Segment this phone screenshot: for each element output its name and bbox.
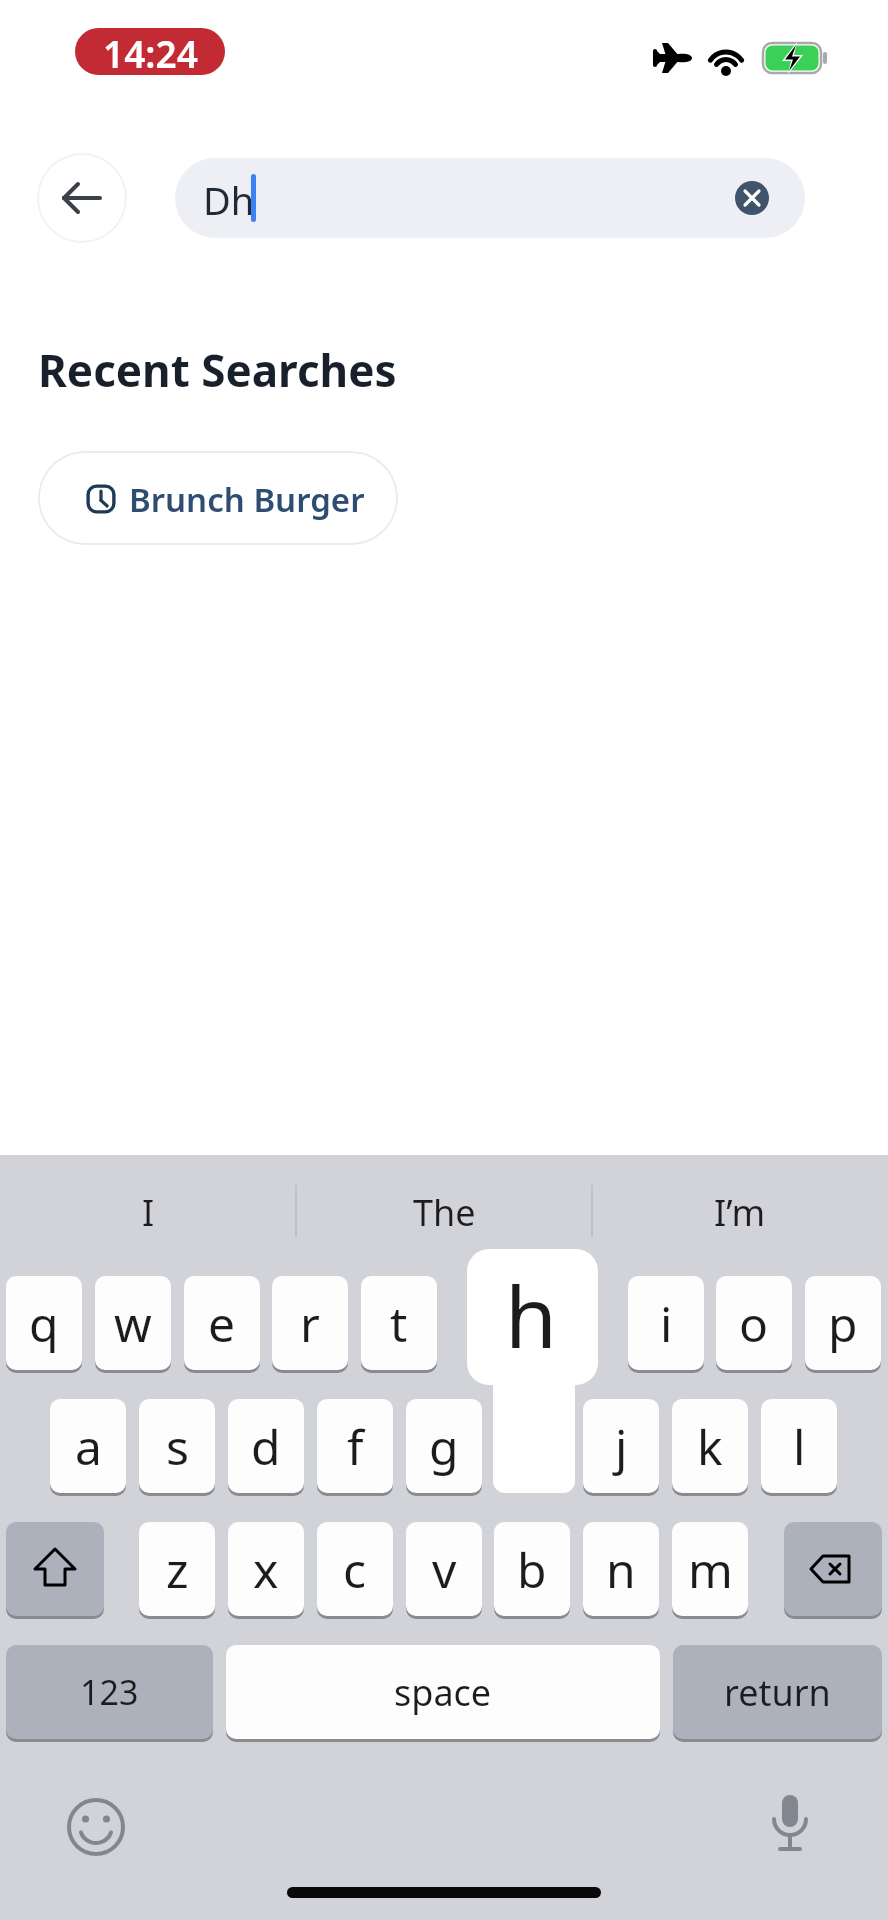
staticText: t: [390, 1291, 408, 1356]
button[interactable]: [735, 181, 769, 215]
button[interactable]: z: [139, 1522, 215, 1616]
button[interactable]: [37, 153, 127, 243]
staticText: I: [142, 1188, 155, 1237]
staticText: c: [343, 1537, 367, 1602]
staticText: g: [429, 1414, 459, 1479]
button[interactable]: g: [406, 1399, 482, 1493]
staticText: l: [793, 1414, 806, 1479]
staticText: I’m: [714, 1188, 766, 1237]
button[interactable]: k: [672, 1399, 748, 1493]
button[interactable]: c: [317, 1522, 393, 1616]
button[interactable]: s: [139, 1399, 215, 1493]
button[interactable]: f: [317, 1399, 393, 1493]
button[interactable]: e: [184, 1276, 260, 1370]
button[interactable]: x: [228, 1522, 304, 1616]
staticText: return: [724, 1668, 831, 1717]
staticText: e: [208, 1291, 236, 1356]
staticText: a: [75, 1414, 102, 1479]
button[interactable]: p: [805, 1276, 881, 1370]
button[interactable]: m: [672, 1522, 748, 1616]
staticText: i: [660, 1291, 673, 1356]
staticText: r: [300, 1291, 320, 1356]
staticText: b: [517, 1537, 547, 1602]
button[interactable]: b: [494, 1522, 570, 1616]
button[interactable]: n: [583, 1522, 659, 1616]
button[interactable]: q: [6, 1276, 82, 1370]
staticText: j: [615, 1414, 628, 1479]
button[interactable]: [784, 1522, 882, 1616]
button[interactable]: l: [761, 1399, 837, 1493]
button[interactable]: i: [628, 1276, 704, 1370]
staticText: Recent Searches: [38, 340, 397, 400]
staticText: d: [251, 1414, 281, 1479]
staticText: o: [739, 1291, 769, 1356]
staticText: Dh: [203, 174, 255, 226]
staticText: f: [347, 1414, 364, 1479]
staticText: Brunch Burger: [129, 477, 365, 522]
staticText: h: [505, 1258, 557, 1372]
button[interactable]: The: [296, 1155, 592, 1269]
button[interactable]: space: [226, 1645, 660, 1739]
staticText: n: [606, 1537, 636, 1602]
staticText: The: [413, 1188, 476, 1237]
staticText: w: [114, 1291, 152, 1356]
button[interactable]: 123: [6, 1645, 213, 1739]
button[interactable]: return: [673, 1645, 882, 1739]
button[interactable]: I’m: [592, 1155, 888, 1269]
button[interactable]: Dh: [175, 158, 805, 238]
button[interactable]: a: [50, 1399, 126, 1493]
staticText: space: [394, 1668, 492, 1717]
staticText: k: [697, 1414, 723, 1479]
button[interactable]: t: [361, 1276, 437, 1370]
staticText: m: [688, 1537, 733, 1602]
staticText: s: [166, 1414, 189, 1479]
staticText: z: [166, 1537, 189, 1602]
staticText: q: [29, 1291, 59, 1356]
button[interactable]: d: [228, 1399, 304, 1493]
staticText: x: [253, 1537, 279, 1602]
button[interactable]: w: [95, 1276, 171, 1370]
button[interactable]: I: [0, 1155, 296, 1269]
button[interactable]: o: [716, 1276, 792, 1370]
staticText: v: [432, 1537, 457, 1602]
button[interactable]: Brunch Burger: [38, 451, 398, 545]
staticText: p: [828, 1291, 858, 1356]
button[interactable]: j: [583, 1399, 659, 1493]
button[interactable]: r: [272, 1276, 348, 1370]
staticText: 123: [80, 1669, 139, 1715]
button[interactable]: v: [406, 1522, 482, 1616]
button[interactable]: [6, 1522, 104, 1616]
staticText: 14:24: [103, 28, 198, 75]
